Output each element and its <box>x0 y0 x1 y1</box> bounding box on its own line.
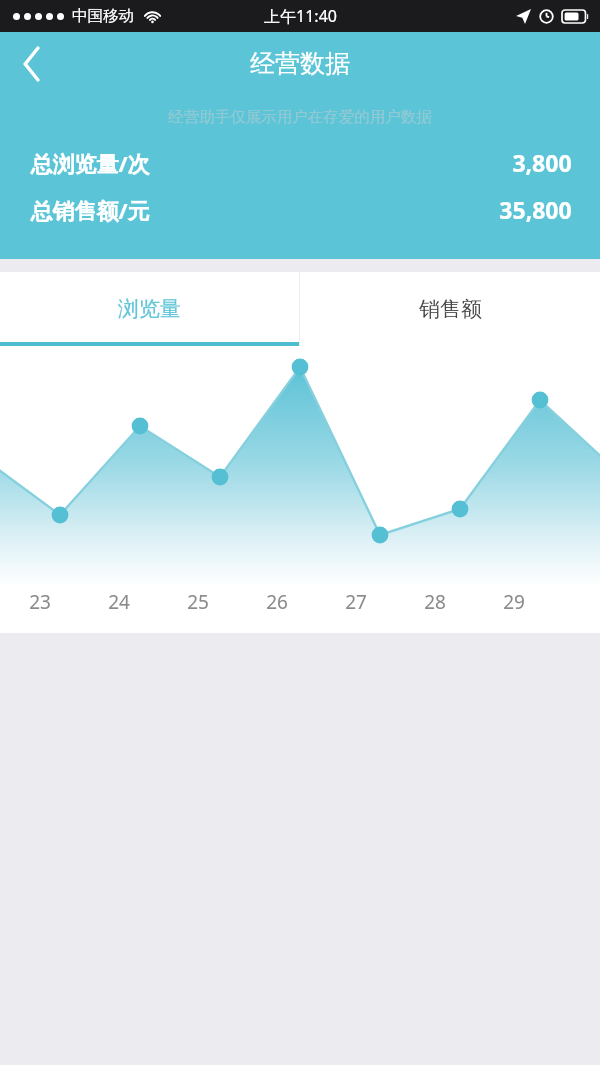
staticText: 销售额 <box>419 296 482 322</box>
button[interactable]: Back <box>0 32 64 95</box>
staticText: 上午11:40 <box>264 5 337 27</box>
button[interactable]: 销售额 <box>300 272 600 346</box>
staticText: 27 <box>345 589 367 615</box>
staticText: 35,800 <box>499 194 572 225</box>
button[interactable]: 浏览量 <box>0 272 299 346</box>
button[interactable]: 总销售额/元 <box>0 186 600 233</box>
staticText: 经营助手仅展示用户在存爱的用户数据 <box>168 107 432 127</box>
button[interactable]: 总浏览量/次 <box>0 139 600 186</box>
staticText: 25 <box>187 589 209 615</box>
staticText: 总浏览量/次 <box>30 148 150 178</box>
staticText: 24 <box>108 589 130 615</box>
staticText: 浏览量 <box>118 296 181 322</box>
staticText: 经营数据 <box>250 48 350 79</box>
staticText: 23 <box>29 589 51 615</box>
staticText: 26 <box>266 589 288 615</box>
staticText: 总销售额/元 <box>30 195 150 225</box>
staticText: 28 <box>424 589 446 615</box>
staticText: 中国移动 <box>72 6 134 26</box>
staticText: 3,800 <box>512 147 572 178</box>
staticText: 29 <box>503 589 525 615</box>
